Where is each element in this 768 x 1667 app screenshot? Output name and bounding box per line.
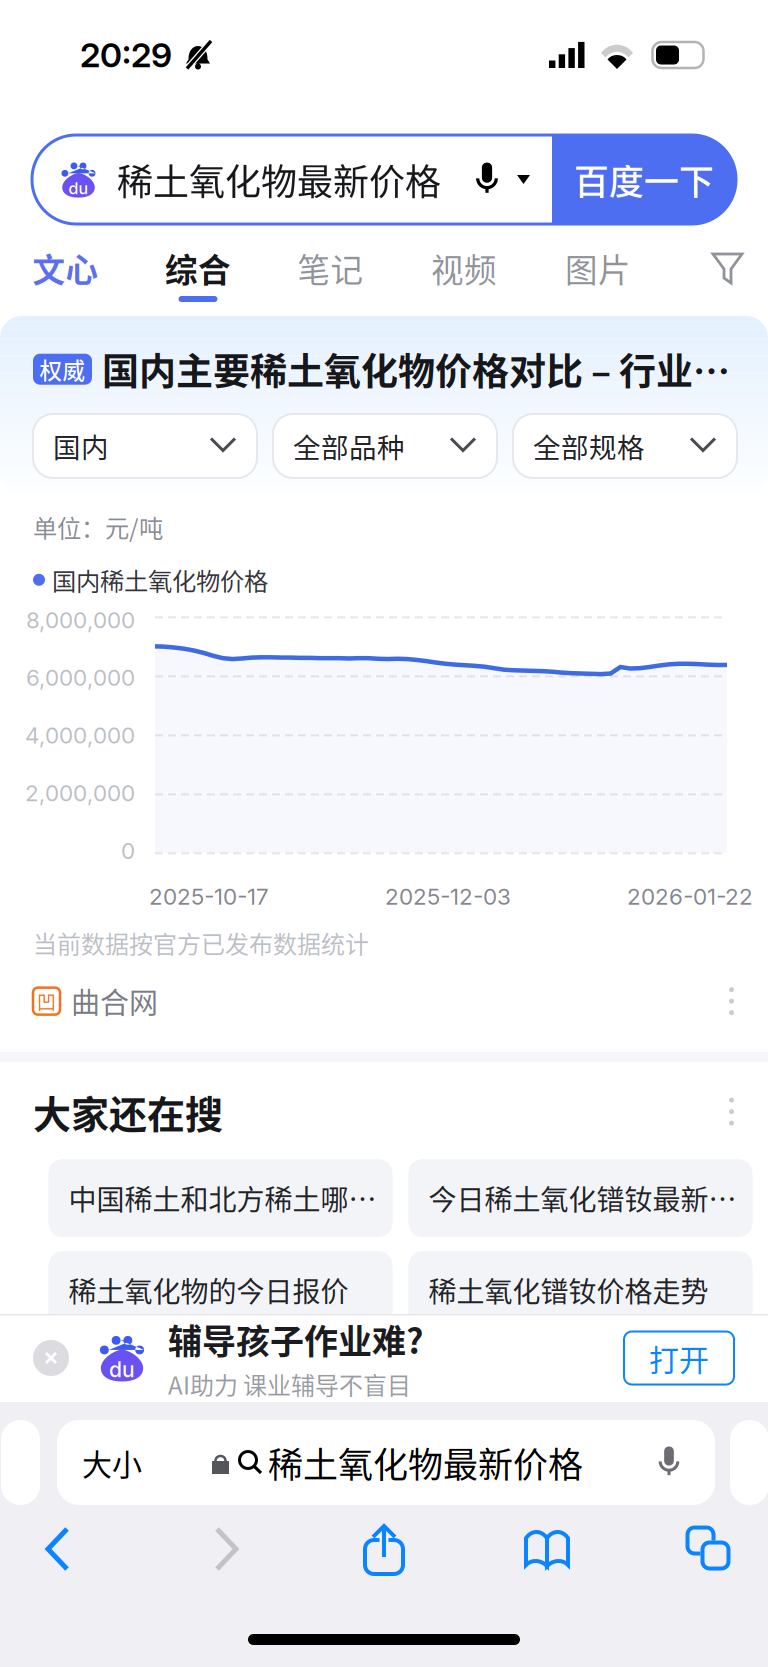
staticText: 稀土氧化物的今日报价 [68, 1270, 348, 1310]
button[interactable]: 书签 [524, 1529, 572, 1571]
staticText: 国内主要稀土氧化物价格对比 – 行业… [102, 342, 730, 396]
staticText: 6,000,000 [26, 664, 135, 691]
button[interactable]: 稀土氧化物的今日报价 [48, 1251, 392, 1329]
staticText: 国内稀土氧化物价格 [52, 562, 268, 597]
staticText: 综合 [165, 244, 231, 292]
staticText: 当前数据按官方已发布数据统计 [33, 925, 369, 960]
staticText: 20:29 [80, 34, 172, 75]
button[interactable]: 打开 [624, 1331, 734, 1384]
button[interactable]: 前进 [212, 1527, 240, 1573]
staticText: 权威 [39, 353, 85, 385]
button[interactable]: 大小 [57, 1420, 715, 1505]
staticText: 全部规格 [533, 426, 645, 466]
staticText: 2025-12-03 [385, 883, 511, 910]
staticText: 稀土氧化物最新价格 [117, 153, 441, 205]
staticText: 0 [121, 837, 135, 864]
staticText: 辅导孩子作业难? [168, 1314, 423, 1364]
staticText: 文心 [32, 244, 98, 292]
button[interactable]: 视频 [396, 229, 532, 307]
staticText: 4,000,000 [25, 722, 135, 749]
button[interactable]: 稀土氧化镨钕价格走势 [408, 1251, 752, 1329]
button[interactable]: 全部规格 [513, 414, 737, 478]
staticText: 中国稀土和北方稀土哪… [68, 1178, 376, 1218]
button[interactable]: 图片 [532, 229, 664, 307]
button[interactable]: 全部品种 [273, 414, 497, 478]
button[interactable]: 标签页 [687, 1527, 732, 1572]
button[interactable]: du [32, 135, 552, 224]
staticText: 视频 [431, 244, 497, 292]
button[interactable]: 文心 [0, 229, 131, 307]
button[interactable]: 筛选 [712, 250, 744, 286]
staticText: 图片 [565, 244, 631, 292]
staticText: 今日稀土氧化镨钕最新… [428, 1178, 736, 1218]
button[interactable]: 分享 [365, 1524, 407, 1576]
button[interactable]: 关闭 [33, 1340, 69, 1376]
button[interactable]: 百度一下 [552, 135, 736, 224]
staticText: 打开 [649, 1336, 709, 1380]
staticText: 2026-01-22 [627, 883, 753, 910]
staticText: 单位：元/吨 [33, 509, 163, 544]
button[interactable]: 综合 [131, 229, 265, 307]
button[interactable]: 笔记 [265, 229, 396, 307]
staticText: 稀土氧化镨钕价格走势 [428, 1270, 708, 1310]
staticText: 凹 [37, 987, 56, 1015]
staticText: 2,000,000 [25, 779, 135, 807]
staticText: AI助力 课业辅导不盲目 [168, 1367, 411, 1401]
staticText: 曲合网 [71, 980, 158, 1022]
staticText: 8,000,000 [26, 606, 135, 634]
staticText: 稀土氧化物最新价格 [268, 1437, 583, 1488]
staticText: 2025-10-17 [149, 883, 269, 910]
button[interactable]: 今日稀土氧化镨钕最新… [408, 1159, 752, 1237]
staticText: du [109, 1357, 135, 1382]
staticText: du [68, 178, 88, 198]
staticText: 大小 [82, 1441, 142, 1484]
staticText: 百度一下 [574, 154, 714, 205]
staticText: 全部品种 [293, 426, 405, 466]
button[interactable]: 国内 [33, 414, 257, 478]
staticText: 大家还在搜 [33, 1084, 223, 1139]
button[interactable]: 中国稀土和北方稀土哪… [48, 1159, 392, 1237]
staticText: 国内 [53, 426, 109, 466]
button[interactable]: 权威 [0, 316, 768, 396]
button[interactable]: 后退 [44, 1527, 72, 1573]
staticText: 笔记 [297, 244, 363, 292]
